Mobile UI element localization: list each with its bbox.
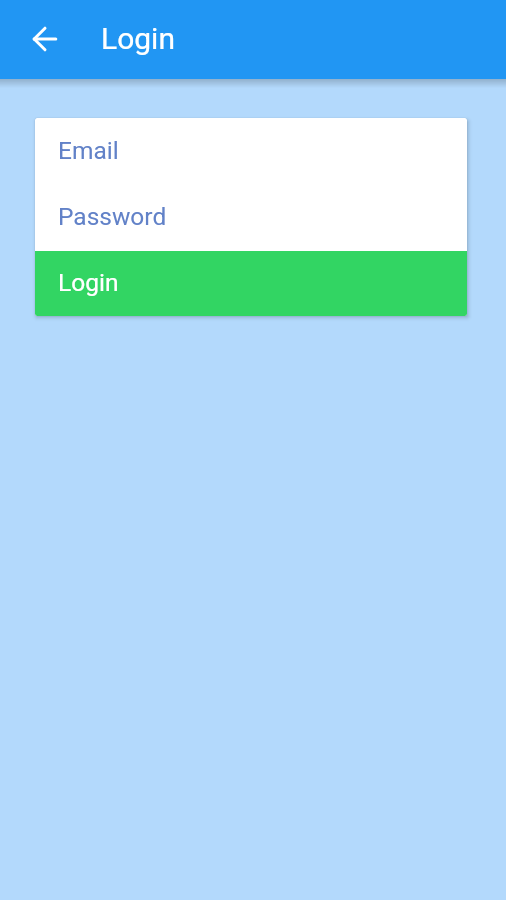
button[interactable]: Email [35, 118, 467, 184]
staticText: Login [58, 268, 119, 297]
button[interactable]: Password [35, 184, 467, 251]
staticText: Login [101, 21, 175, 56]
button[interactable]: Back [22, 16, 68, 62]
staticText: Email [58, 136, 119, 165]
staticText: Password [58, 202, 167, 231]
button[interactable]: Login [35, 251, 467, 316]
